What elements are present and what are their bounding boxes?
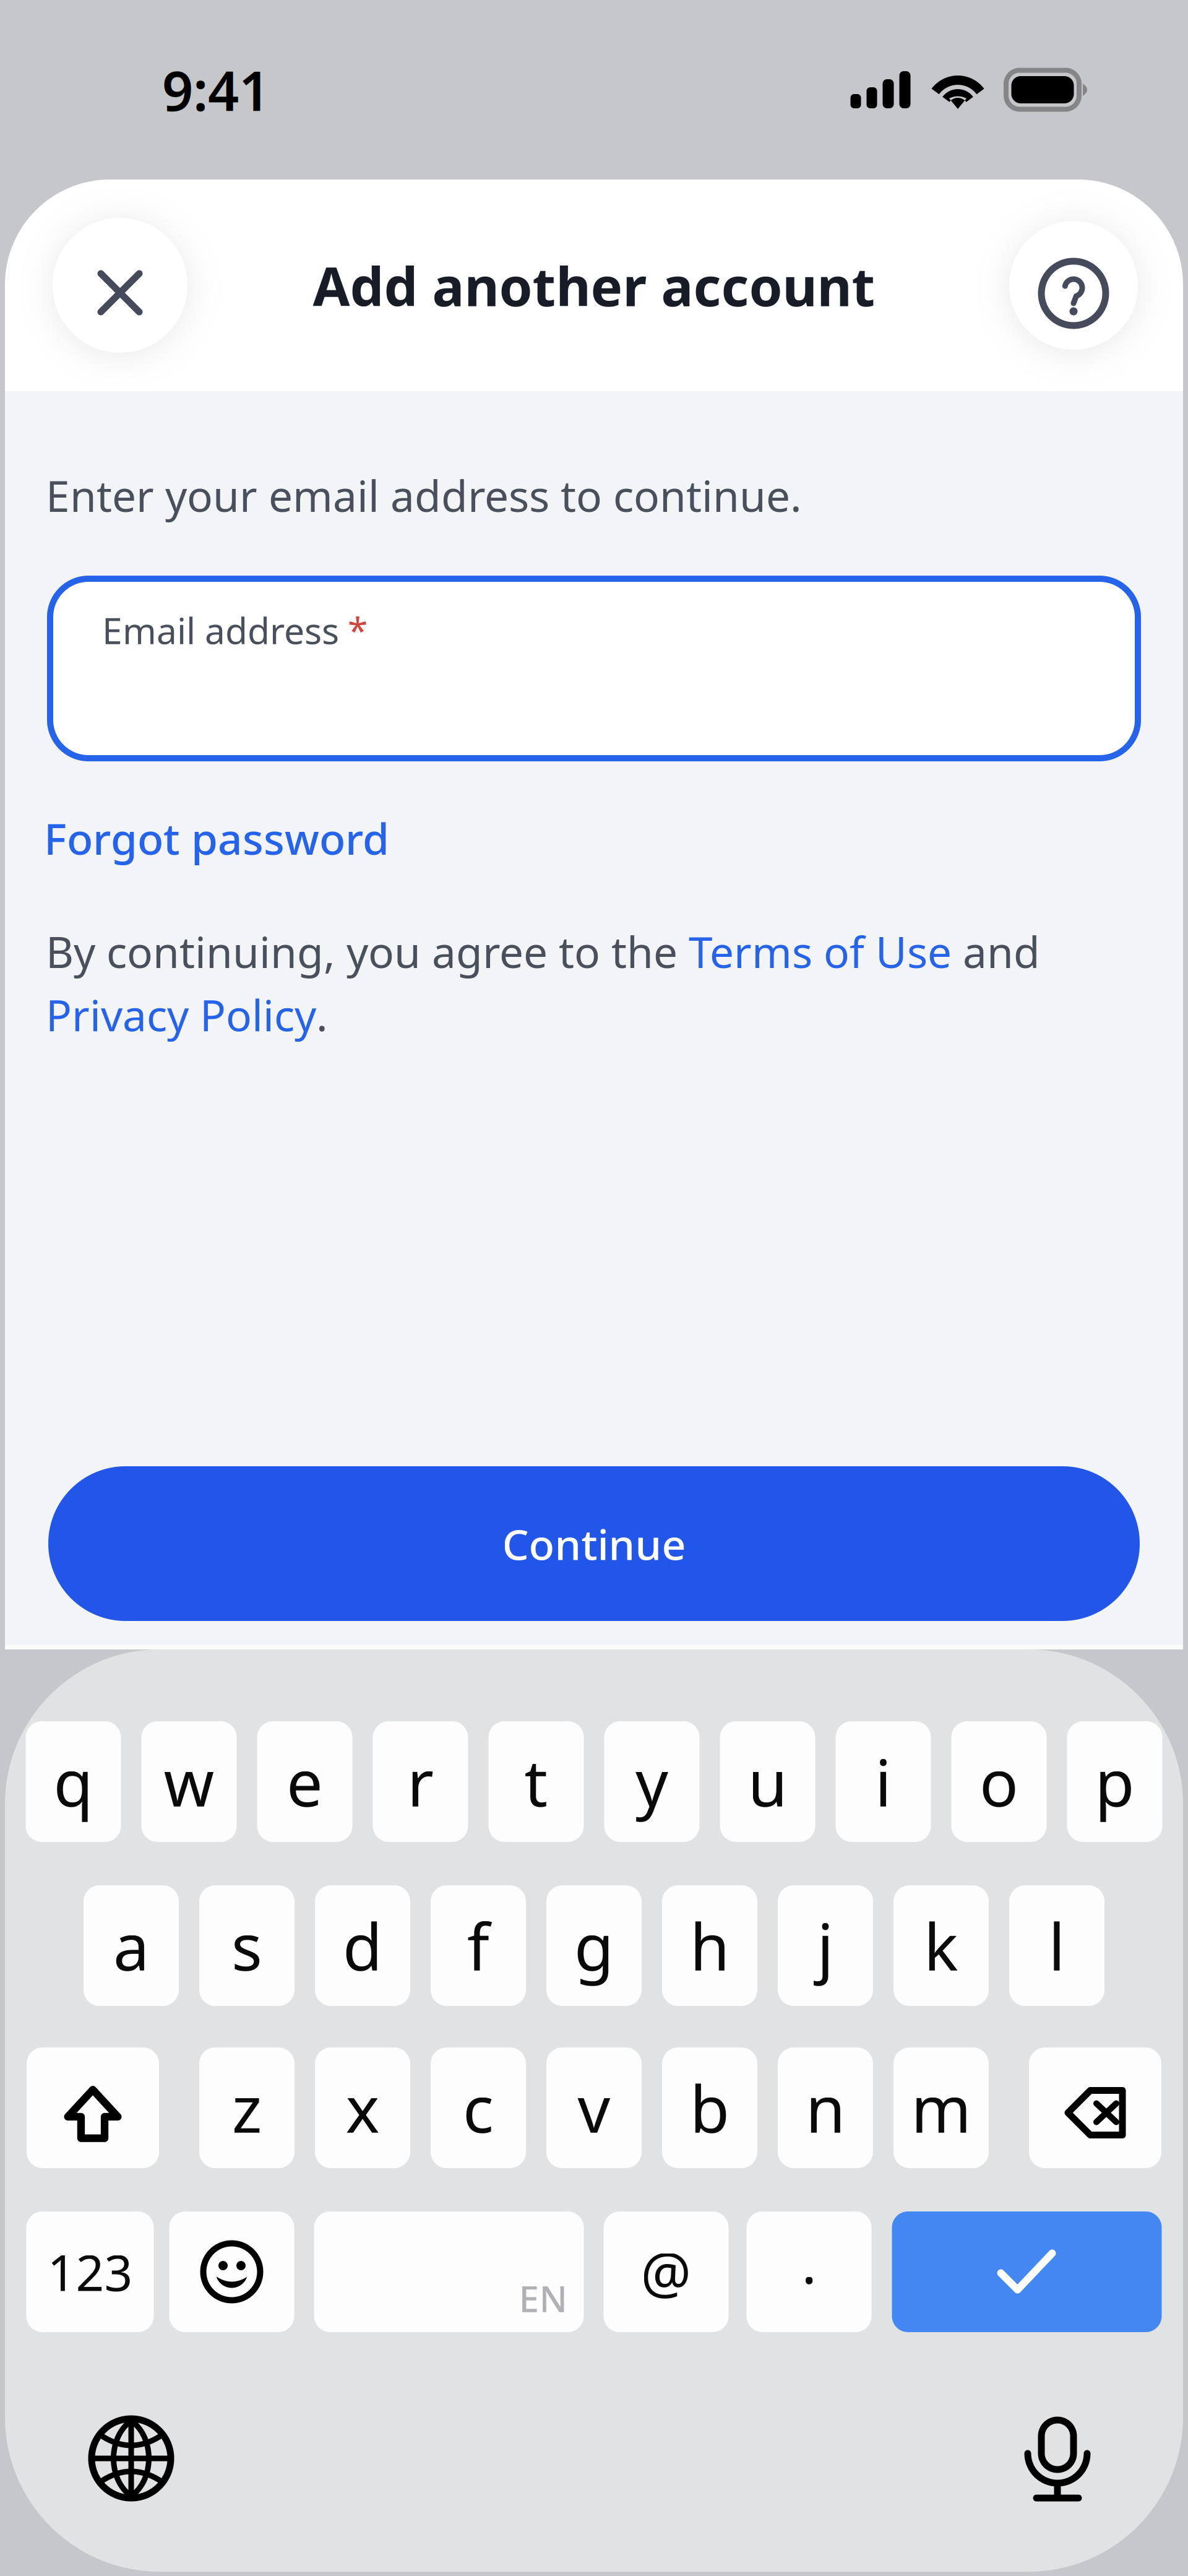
button[interactable]: Dictate: [1028, 2415, 1087, 2502]
staticText: Forgot password: [44, 810, 389, 867]
button[interactable]: g: [546, 1885, 642, 2006]
button[interactable]: u: [720, 1721, 815, 1842]
button[interactable]: Help: [1009, 221, 1138, 350]
staticText: r: [407, 1739, 434, 1824]
staticText: 123: [47, 2239, 133, 2305]
button[interactable]: h: [662, 1885, 757, 2006]
staticText: y: [635, 1739, 668, 1824]
staticText: u: [748, 1739, 787, 1824]
staticText: f: [467, 1903, 489, 1988]
staticText: k: [924, 1903, 958, 1988]
button[interactable]: a: [84, 1885, 179, 2006]
button[interactable]: Delete: [1029, 2047, 1161, 2168]
button[interactable]: @: [604, 2211, 729, 2332]
staticText: w: [164, 1739, 214, 1824]
button[interactable]: f: [431, 1885, 526, 2006]
button[interactable]: .: [747, 2211, 872, 2332]
button[interactable]: n: [778, 2047, 873, 2168]
staticText: x: [346, 2065, 380, 2150]
button[interactable]: w: [141, 1721, 237, 1842]
staticText: i: [875, 1739, 892, 1824]
staticText: Enter your email address to continue.: [46, 467, 802, 524]
staticText: l: [1048, 1903, 1065, 1988]
staticText: b: [690, 2065, 730, 2150]
staticText: o: [979, 1739, 1018, 1824]
button[interactable]: Done: [892, 2211, 1162, 2332]
button[interactable]: c: [431, 2047, 526, 2168]
staticText: Continue: [502, 1516, 686, 1572]
staticText: and: [952, 923, 1040, 980]
button[interactable]: Forgot password: [50, 810, 389, 867]
button[interactable]: Shift: [27, 2047, 159, 2168]
staticText: c: [463, 2065, 494, 2150]
staticText: Email address: [102, 606, 339, 654]
button[interactable]: j: [778, 1885, 873, 2006]
button[interactable]: Close: [53, 218, 187, 353]
button[interactable]: y: [604, 1721, 699, 1842]
button[interactable]: m: [893, 2047, 989, 2168]
button[interactable]: l: [1009, 1885, 1104, 2006]
staticText: v: [578, 2065, 610, 2150]
button[interactable]: s: [199, 1885, 295, 2006]
button[interactable]: b: [662, 2047, 757, 2168]
staticText: .: [802, 2225, 816, 2299]
button[interactable]: Space: [314, 2211, 584, 2332]
staticText: 9:41: [162, 54, 270, 126]
button[interactable]: i: [836, 1721, 931, 1842]
staticText: *: [348, 606, 368, 654]
button[interactable]: Continue: [48, 1466, 1140, 1621]
staticText: t: [524, 1739, 548, 1824]
staticText: d: [343, 1903, 382, 1988]
button[interactable]: t: [489, 1721, 584, 1842]
staticText: a: [113, 1903, 149, 1988]
button[interactable]: 123: [26, 2211, 154, 2332]
button[interactable]: o: [951, 1721, 1047, 1842]
staticText: p: [1095, 1739, 1134, 1824]
staticText: By continuing, you agree to the: [46, 923, 689, 980]
button[interactable]: k: [893, 1885, 989, 2006]
staticText: Terms of Use: [689, 923, 952, 980]
staticText: z: [232, 2065, 262, 2150]
staticText: m: [911, 2065, 971, 2150]
button[interactable]: p: [1067, 1721, 1162, 1842]
staticText: e: [286, 1739, 323, 1824]
staticText: h: [690, 1903, 730, 1988]
staticText: n: [806, 2065, 845, 2150]
staticText: .: [316, 986, 328, 1043]
staticText: EN: [519, 2274, 568, 2322]
button[interactable]: Next keyboard: [92, 2419, 171, 2498]
button[interactable]: z: [199, 2047, 295, 2168]
staticText: j: [817, 1903, 834, 1988]
button[interactable]: r: [373, 1721, 468, 1842]
staticText: @: [641, 2235, 691, 2309]
button[interactable]: d: [315, 1885, 410, 2006]
staticText: g: [574, 1903, 614, 1988]
staticText: q: [54, 1739, 93, 1824]
staticText: s: [231, 1903, 262, 1988]
staticText: Add another account: [313, 250, 875, 321]
button[interactable]: Emoji: [169, 2211, 294, 2332]
staticText: Privacy Policy: [46, 986, 316, 1043]
button[interactable]: q: [26, 1721, 121, 1842]
button[interactable]: v: [546, 2047, 642, 2168]
button[interactable]: x: [315, 2047, 410, 2168]
button[interactable]: e: [257, 1721, 352, 1842]
